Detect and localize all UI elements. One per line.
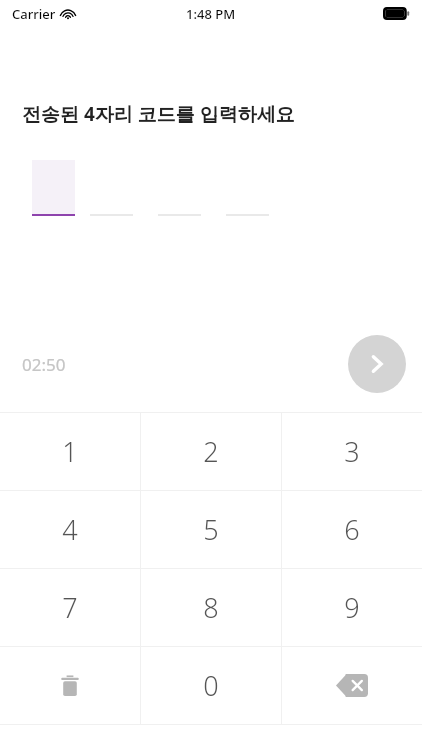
button[interactable]: Clear xyxy=(0,647,140,724)
staticText: 전송된 4자리 코드를 입력하세요 xyxy=(22,101,295,127)
button[interactable]: Backspace xyxy=(282,647,422,724)
button[interactable]: 6 xyxy=(282,491,422,568)
button[interactable]: 9 xyxy=(282,569,422,646)
staticText: Carrier xyxy=(12,5,56,23)
staticText: 02:50 xyxy=(22,353,66,376)
staticText: 4 xyxy=(62,511,78,548)
button[interactable]: Next xyxy=(348,335,406,393)
button[interactable]: 1 xyxy=(0,413,140,490)
staticText: 1 xyxy=(62,433,78,470)
button[interactable]: 0 xyxy=(141,647,281,724)
button[interactable] xyxy=(226,160,269,216)
button[interactable] xyxy=(90,160,133,216)
button[interactable]: 5 xyxy=(141,491,281,568)
button[interactable]: 7 xyxy=(0,569,140,646)
staticText: 2 xyxy=(203,433,219,470)
staticText: 7 xyxy=(62,589,78,626)
button[interactable] xyxy=(158,160,201,216)
button[interactable]: 2 xyxy=(141,413,281,490)
staticText: 1:48 PM xyxy=(186,5,236,23)
staticText: 0 xyxy=(203,667,219,704)
staticText: 5 xyxy=(203,511,219,548)
button[interactable]: 8 xyxy=(141,569,281,646)
staticText: 3 xyxy=(344,433,360,470)
staticText: 8 xyxy=(203,589,219,626)
button[interactable]: 3 xyxy=(282,413,422,490)
button[interactable]: 4 xyxy=(0,491,140,568)
staticText: 6 xyxy=(344,511,360,548)
button[interactable] xyxy=(32,160,75,216)
staticText: 9 xyxy=(344,589,360,626)
